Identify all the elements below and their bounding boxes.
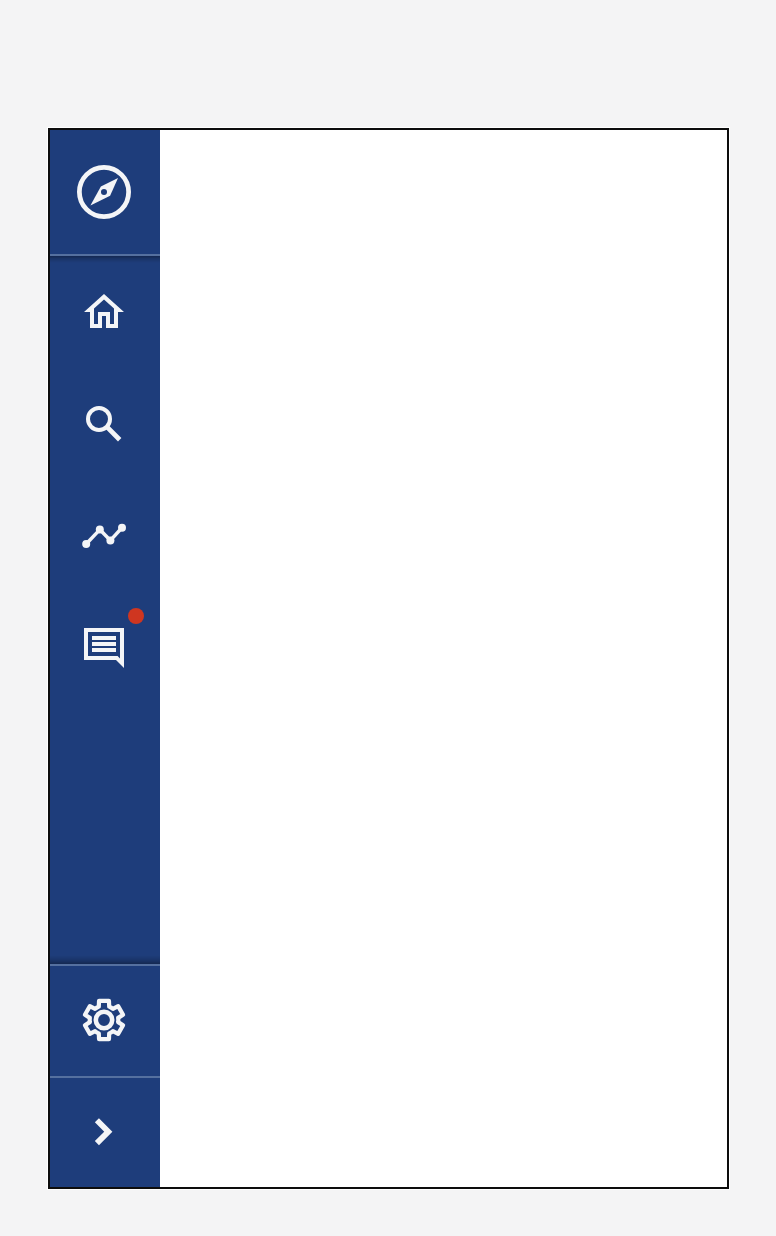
button[interactable]: Search	[76, 396, 132, 452]
button[interactable]: Settings	[76, 992, 132, 1048]
button[interactable]: Explore	[50, 130, 160, 254]
button[interactable]: Home	[76, 284, 132, 340]
button[interactable]: Expand	[76, 1104, 132, 1160]
button[interactable]: Insights	[76, 508, 132, 564]
button[interactable]: Messages	[76, 620, 148, 676]
